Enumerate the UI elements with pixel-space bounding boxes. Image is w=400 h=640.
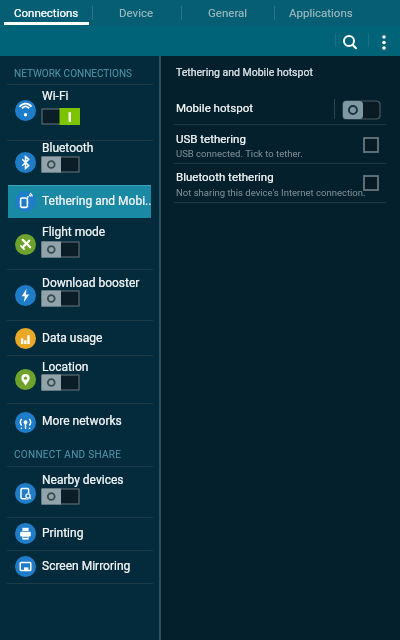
staticText: Download booster [42, 276, 140, 290]
staticText: Bluetooth [42, 141, 94, 155]
button[interactable]: Device [92, 0, 181, 26]
button[interactable]: Wi-Fi [0, 84, 159, 140]
staticText: Wi-Fi [42, 89, 69, 103]
button[interactable] [8, 185, 151, 218]
button[interactable]: Bluetooth [0, 140, 159, 184]
staticText: Device [119, 6, 154, 19]
staticText: Connections [14, 6, 79, 19]
button[interactable]: Mobile hotspot [161, 92, 400, 124]
staticText: Nearby devices [42, 473, 124, 487]
button[interactable]: More networks [0, 403, 159, 441]
button[interactable]: Bluetooth tethering [161, 164, 400, 202]
staticText: USB tethering [176, 132, 246, 145]
staticText: Location [42, 360, 89, 374]
staticText: Flight mode [42, 225, 106, 239]
button[interactable] [338, 29, 363, 54]
button[interactable]: Screen Mirroring [0, 550, 159, 583]
button[interactable]: Download booster [0, 269, 159, 320]
staticText: Bluetooth tethering [176, 170, 274, 183]
button[interactable] [375, 29, 393, 54]
staticText: NETWORK CONNECTIONS [14, 68, 132, 80]
button[interactable]: Applications [274, 0, 368, 26]
button[interactable]: Connections [0, 0, 92, 26]
button[interactable]: USB tethering [161, 125, 400, 163]
staticText: Screen Mirroring [42, 559, 131, 573]
staticText: CONNECT AND SHARE [14, 449, 122, 461]
button[interactable]: Location [0, 355, 159, 403]
button[interactable]: General [181, 0, 274, 26]
staticText: Applications [289, 6, 353, 19]
staticText: General [208, 6, 248, 19]
staticText: Tethering and Mobi.. [42, 194, 152, 208]
button[interactable]: Printing [0, 517, 159, 550]
staticText: Tethering and Mobile hotspot [176, 66, 313, 78]
button[interactable]: Data usage [0, 320, 159, 355]
staticText: Not sharing this device's Internet conne… [176, 187, 366, 198]
button[interactable]: Flight mode [0, 222, 159, 269]
staticText: Data usage [42, 331, 103, 345]
staticText: Mobile hotspot [176, 101, 253, 114]
staticText: More networks [42, 414, 122, 428]
staticText: USB connected. Tick to tether. [176, 148, 303, 159]
button[interactable]: Nearby devices [0, 466, 159, 517]
staticText: Printing [42, 526, 84, 540]
